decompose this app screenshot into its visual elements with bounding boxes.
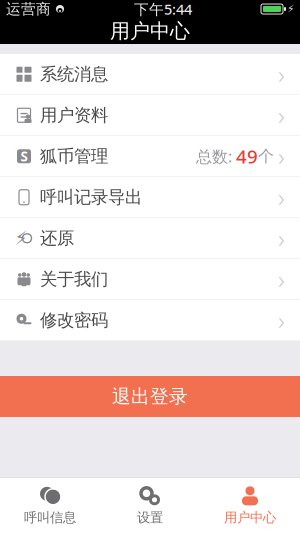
staticText: 呼叫记录导出 (40, 187, 142, 208)
button[interactable]: 系统消息 (0, 54, 300, 95)
staticText: 用户中心 (110, 19, 190, 43)
staticText: 个 (258, 146, 274, 166)
button[interactable]: S (0, 136, 300, 177)
staticText: 修改密码 (40, 310, 108, 331)
button[interactable]: ⚡︎ (0, 218, 300, 259)
button[interactable]: 修改密码 (0, 300, 300, 341)
button[interactable]: 关于我们 (0, 259, 300, 300)
staticText: › (278, 98, 285, 132)
staticText: S (20, 147, 27, 165)
button[interactable]: 呼叫信息 (0, 478, 100, 532)
button[interactable]: 用户中心 (200, 478, 300, 532)
staticText: › (278, 262, 285, 296)
staticText: 49 (236, 144, 258, 169)
button[interactable]: 设置 (100, 478, 200, 532)
staticText: 总数: (196, 146, 236, 167)
staticText: 还原 (40, 228, 74, 249)
staticText: 退出登录 (112, 385, 188, 408)
staticText: ⚡︎ (287, 3, 294, 15)
staticText: › (278, 139, 285, 173)
staticText: 系统消息 (40, 64, 108, 85)
staticText: 下午5:44 (134, 0, 192, 19)
staticText: 狐币管理 (40, 146, 108, 167)
staticText: 呼叫信息 (24, 509, 76, 526)
staticText: 关于我们 (40, 269, 108, 290)
staticText: 用户中心 (224, 509, 276, 526)
staticText: 运营商 (6, 0, 51, 18)
button[interactable]: 用户资料 (0, 95, 300, 136)
staticText: › (278, 221, 285, 255)
button[interactable]: 呼叫记录导出 (0, 177, 300, 218)
staticText: ⚡︎ (14, 228, 27, 249)
button[interactable]: 退出登录 (0, 376, 300, 417)
staticText: 用户资料 (40, 105, 108, 126)
staticText: 设置 (137, 509, 163, 526)
staticText: › (278, 303, 285, 337)
staticText: › (278, 180, 285, 214)
staticText: › (278, 57, 285, 91)
